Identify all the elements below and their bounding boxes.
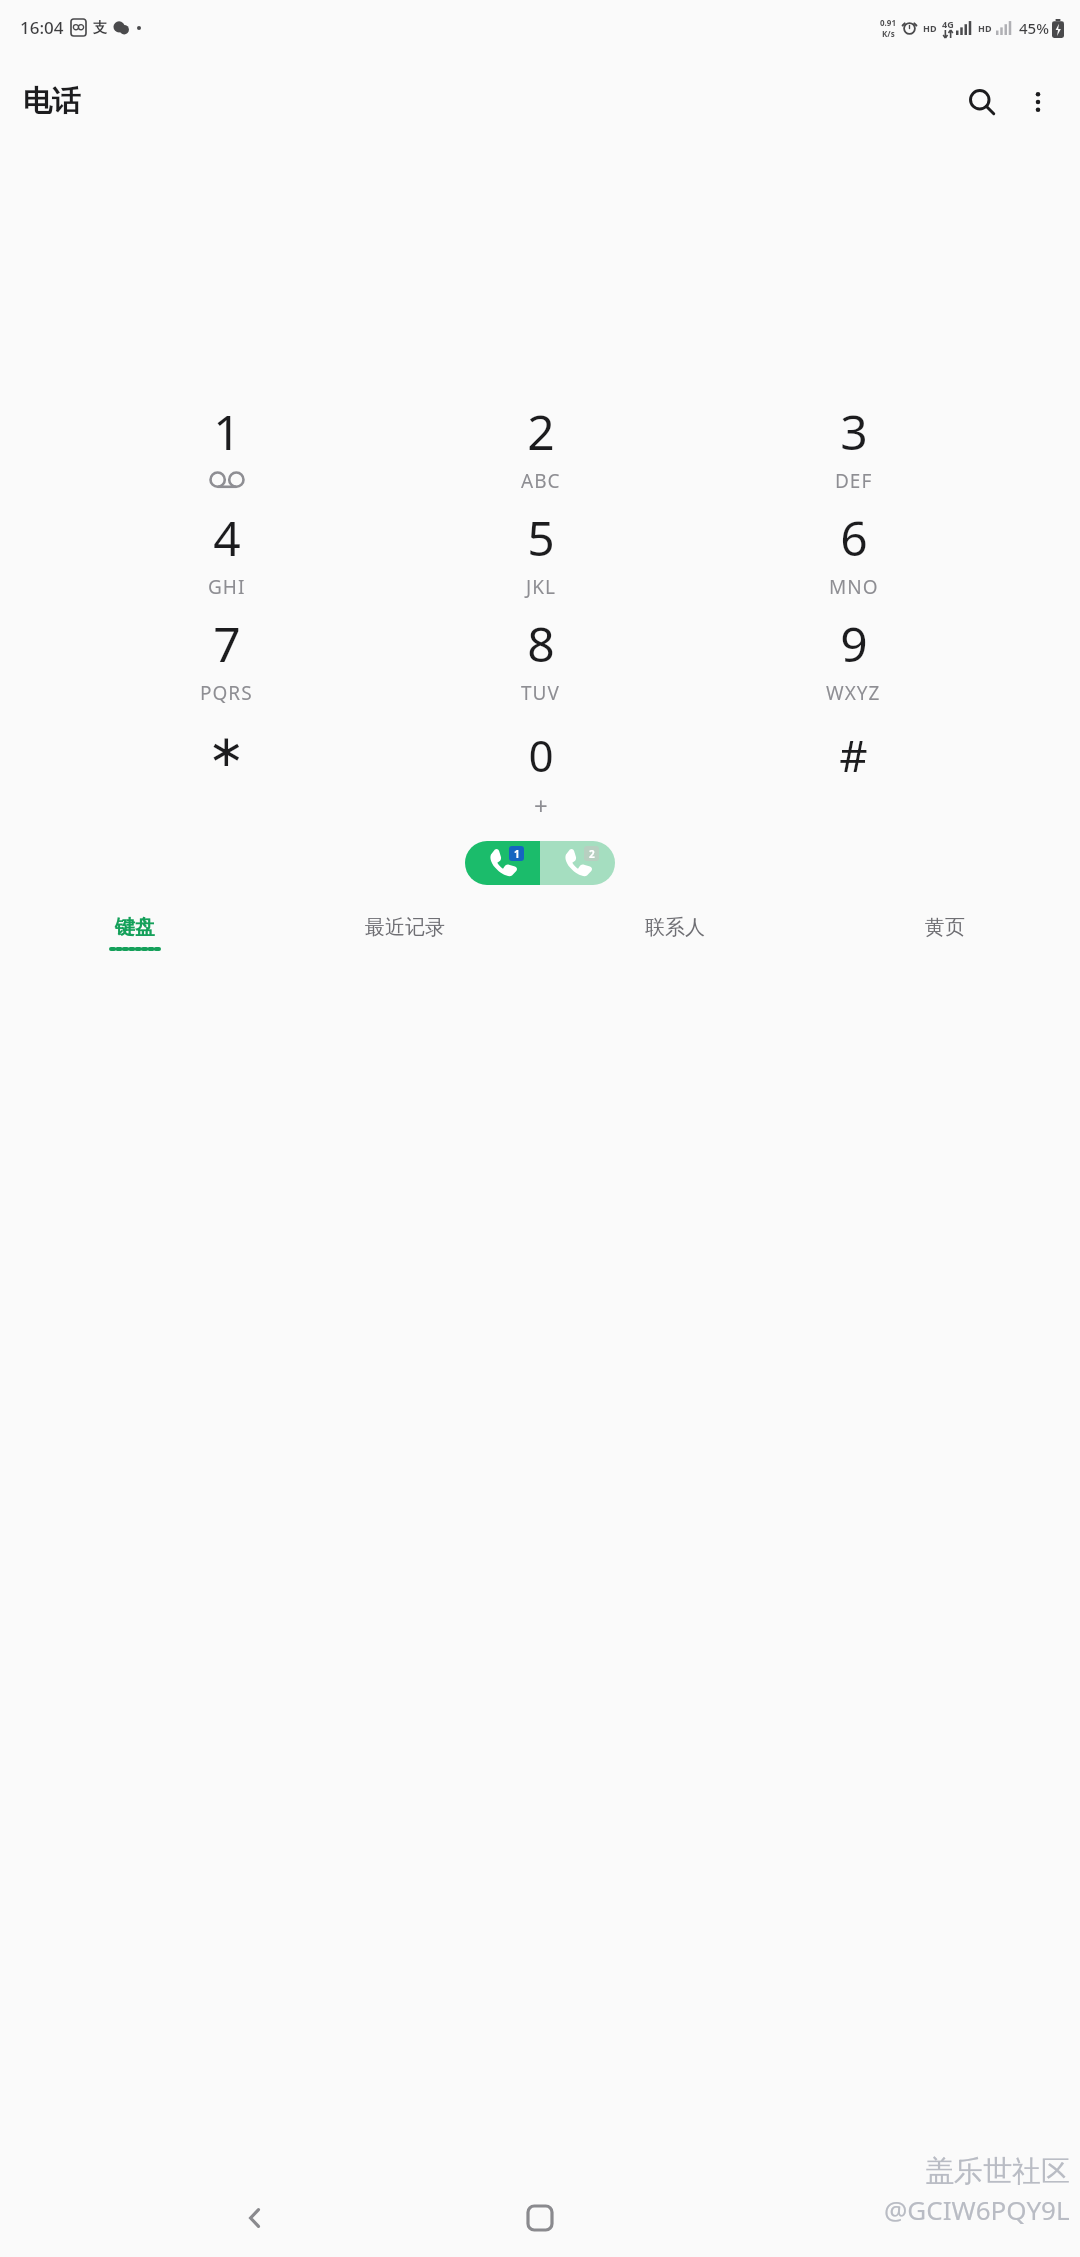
staticText: HD [923, 22, 937, 34]
staticText: + [534, 789, 548, 819]
button[interactable]: 黄页 [810, 915, 1080, 987]
staticText: 支 [93, 19, 107, 37]
button[interactable]: 4 [139, 501, 314, 607]
staticText: 键盘 [115, 915, 155, 940]
button[interactable]: 7 [139, 607, 314, 713]
button[interactable]: 1 [139, 395, 314, 501]
button[interactable]: 联系人 [540, 915, 810, 987]
button[interactable]: 9 [766, 607, 941, 713]
staticText: 5 [527, 505, 555, 570]
staticText: DEF [835, 468, 873, 494]
staticText: 电话 [23, 83, 81, 120]
staticText: 7 [213, 611, 241, 676]
button[interactable]: Call with SIM 2 [540, 841, 615, 885]
button[interactable]: 2 [453, 395, 628, 501]
staticText: PQRS [200, 680, 253, 706]
staticText: # [839, 725, 868, 785]
staticText: 联系人 [645, 915, 705, 940]
staticText: 45% [1019, 18, 1049, 38]
staticText: 0.91 [880, 17, 896, 28]
staticText: K/s [882, 28, 895, 39]
button[interactable]: Search [954, 74, 1010, 130]
button[interactable]: More options [1010, 74, 1066, 130]
staticText: 0 [528, 725, 554, 785]
staticText: 最近记录 [365, 915, 445, 940]
staticText: MNO [829, 574, 879, 600]
button[interactable]: # [766, 713, 941, 819]
staticText: 黄页 [925, 915, 965, 940]
staticText: 2 [527, 399, 555, 464]
staticText: TUV [521, 680, 560, 706]
button[interactable]: Back [224, 2187, 286, 2249]
button[interactable]: Call with SIM 1 [465, 841, 540, 885]
staticText: 4G [942, 18, 954, 30]
staticText: ∗ [208, 725, 245, 776]
staticText: 1 [514, 847, 520, 861]
staticText: 9 [840, 611, 868, 676]
staticText: 6 [840, 505, 868, 570]
staticText: HD [978, 22, 992, 34]
staticText: 2 [589, 847, 595, 861]
button[interactable]: ∗ [139, 713, 314, 819]
staticText: 8 [527, 611, 555, 676]
staticText: 1 [213, 399, 241, 464]
staticText: 4 [213, 505, 241, 570]
button[interactable]: 6 [766, 501, 941, 607]
staticText: JKL [526, 574, 556, 600]
staticText: 3 [840, 399, 868, 464]
button[interactable]: 3 [766, 395, 941, 501]
button[interactable]: 8 [453, 607, 628, 713]
staticText: GHI [208, 574, 246, 600]
staticText: 盖乐世社区 [925, 2153, 1070, 2190]
button[interactable]: 最近记录 [270, 915, 540, 987]
button[interactable]: 键盘 [0, 915, 270, 987]
staticText: @GCIW6PQY9L [884, 2192, 1070, 2227]
staticText: ABC [521, 468, 561, 494]
staticText: WXYZ [826, 680, 881, 706]
button[interactable]: 0 [453, 713, 628, 819]
staticText: 16:04 [20, 16, 64, 39]
button[interactable]: Home [509, 2187, 571, 2249]
button[interactable]: 5 [453, 501, 628, 607]
